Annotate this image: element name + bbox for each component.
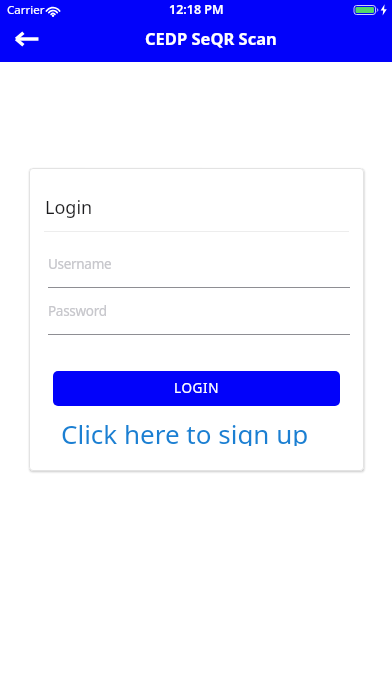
staticText: Password bbox=[48, 302, 107, 320]
button[interactable]: Username bbox=[48, 251, 350, 276]
staticText: Click here to sign up bbox=[61, 416, 309, 446]
button[interactable]: Click here to sign up bbox=[61, 416, 309, 446]
staticText: 12:18 PM bbox=[169, 1, 224, 18]
staticText: Carrier bbox=[7, 2, 45, 18]
button[interactable]: Password bbox=[48, 298, 350, 323]
button[interactable]: LOGIN bbox=[53, 371, 340, 406]
staticText: Username bbox=[48, 255, 112, 273]
staticText: CEDP SeQR Scan bbox=[145, 27, 277, 49]
staticText: LOGIN bbox=[174, 379, 220, 397]
button[interactable] bbox=[8, 24, 46, 54]
staticText: Login bbox=[45, 195, 93, 220]
